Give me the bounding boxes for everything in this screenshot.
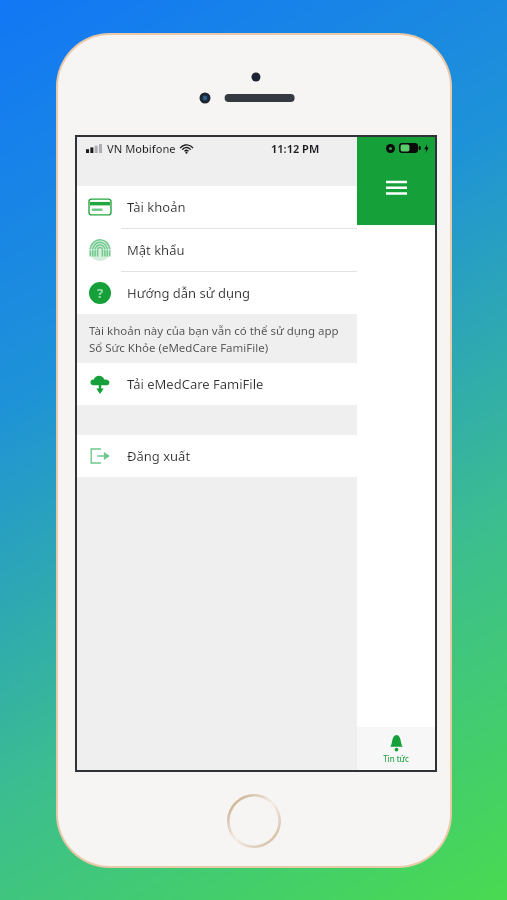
staticText: Mật khẩu — [127, 241, 185, 259]
button[interactable]: Đăng xuất — [77, 435, 435, 477]
staticText: 11:12 PM — [271, 141, 320, 156]
button[interactable]: Tin tức — [357, 727, 435, 770]
staticText: Đăng xuất — [127, 447, 191, 465]
button[interactable]: Menu — [379, 171, 413, 205]
staticText: Tài khoản — [127, 198, 186, 216]
button[interactable]: Mật khẩu — [77, 229, 435, 271]
staticText: ? — [97, 284, 104, 302]
button[interactable]: Tài khoản — [77, 186, 435, 228]
button[interactable]: Tải eMedCare FamiFile — [77, 363, 435, 405]
button[interactable]: ? — [77, 272, 435, 314]
staticText: VN Mobifone — [107, 141, 176, 156]
staticText: Tải eMedCare FamiFile — [127, 375, 264, 393]
staticText: Tài khoản này của bạn vẫn có thể sử dụng… — [89, 323, 339, 355]
staticText: Hướng dẫn sử dụng — [127, 284, 250, 302]
staticText: Tin tức — [383, 753, 409, 764]
